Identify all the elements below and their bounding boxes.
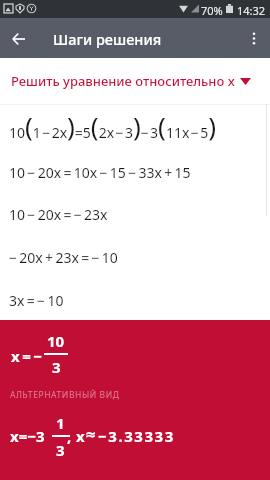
staticText: 10 − 20x = 10x − 15 − 33x + 15 xyxy=(9,163,191,182)
staticText: 3 xyxy=(56,440,67,460)
staticText: 3x = − 10 xyxy=(9,291,64,310)
staticText: , xyxy=(67,426,72,446)
staticText: 10 − 20x = − 23x xyxy=(9,205,108,224)
staticText: −3.33333 xyxy=(98,426,175,446)
button[interactable]: Back xyxy=(4,25,32,53)
staticText: x = − xyxy=(11,346,42,366)
staticText: 10 xyxy=(47,331,65,351)
staticText: Решить уравнение относительно x xyxy=(11,72,235,90)
staticText: 1 xyxy=(56,413,67,433)
staticText: 3 xyxy=(52,357,61,377)
staticText: − 20x + 23x = − 10 xyxy=(9,248,118,267)
staticText: ≈ xyxy=(85,426,97,442)
staticText: x xyxy=(76,426,85,446)
staticText: АЛЬТЕРНАТИВНЫЙ ВИД xyxy=(10,389,120,401)
staticText: x=−3 xyxy=(10,426,45,446)
staticText: Шаги решения xyxy=(53,29,162,49)
button[interactable]: More options xyxy=(240,24,268,52)
staticText: 14:32 xyxy=(237,3,266,18)
staticText: 70% xyxy=(201,3,223,18)
button[interactable]: Решить уравнение относительно x xyxy=(0,58,270,104)
staticText: 10(1 − 2x)=5(2x − 3)− 3(11x − 5) xyxy=(9,108,216,143)
